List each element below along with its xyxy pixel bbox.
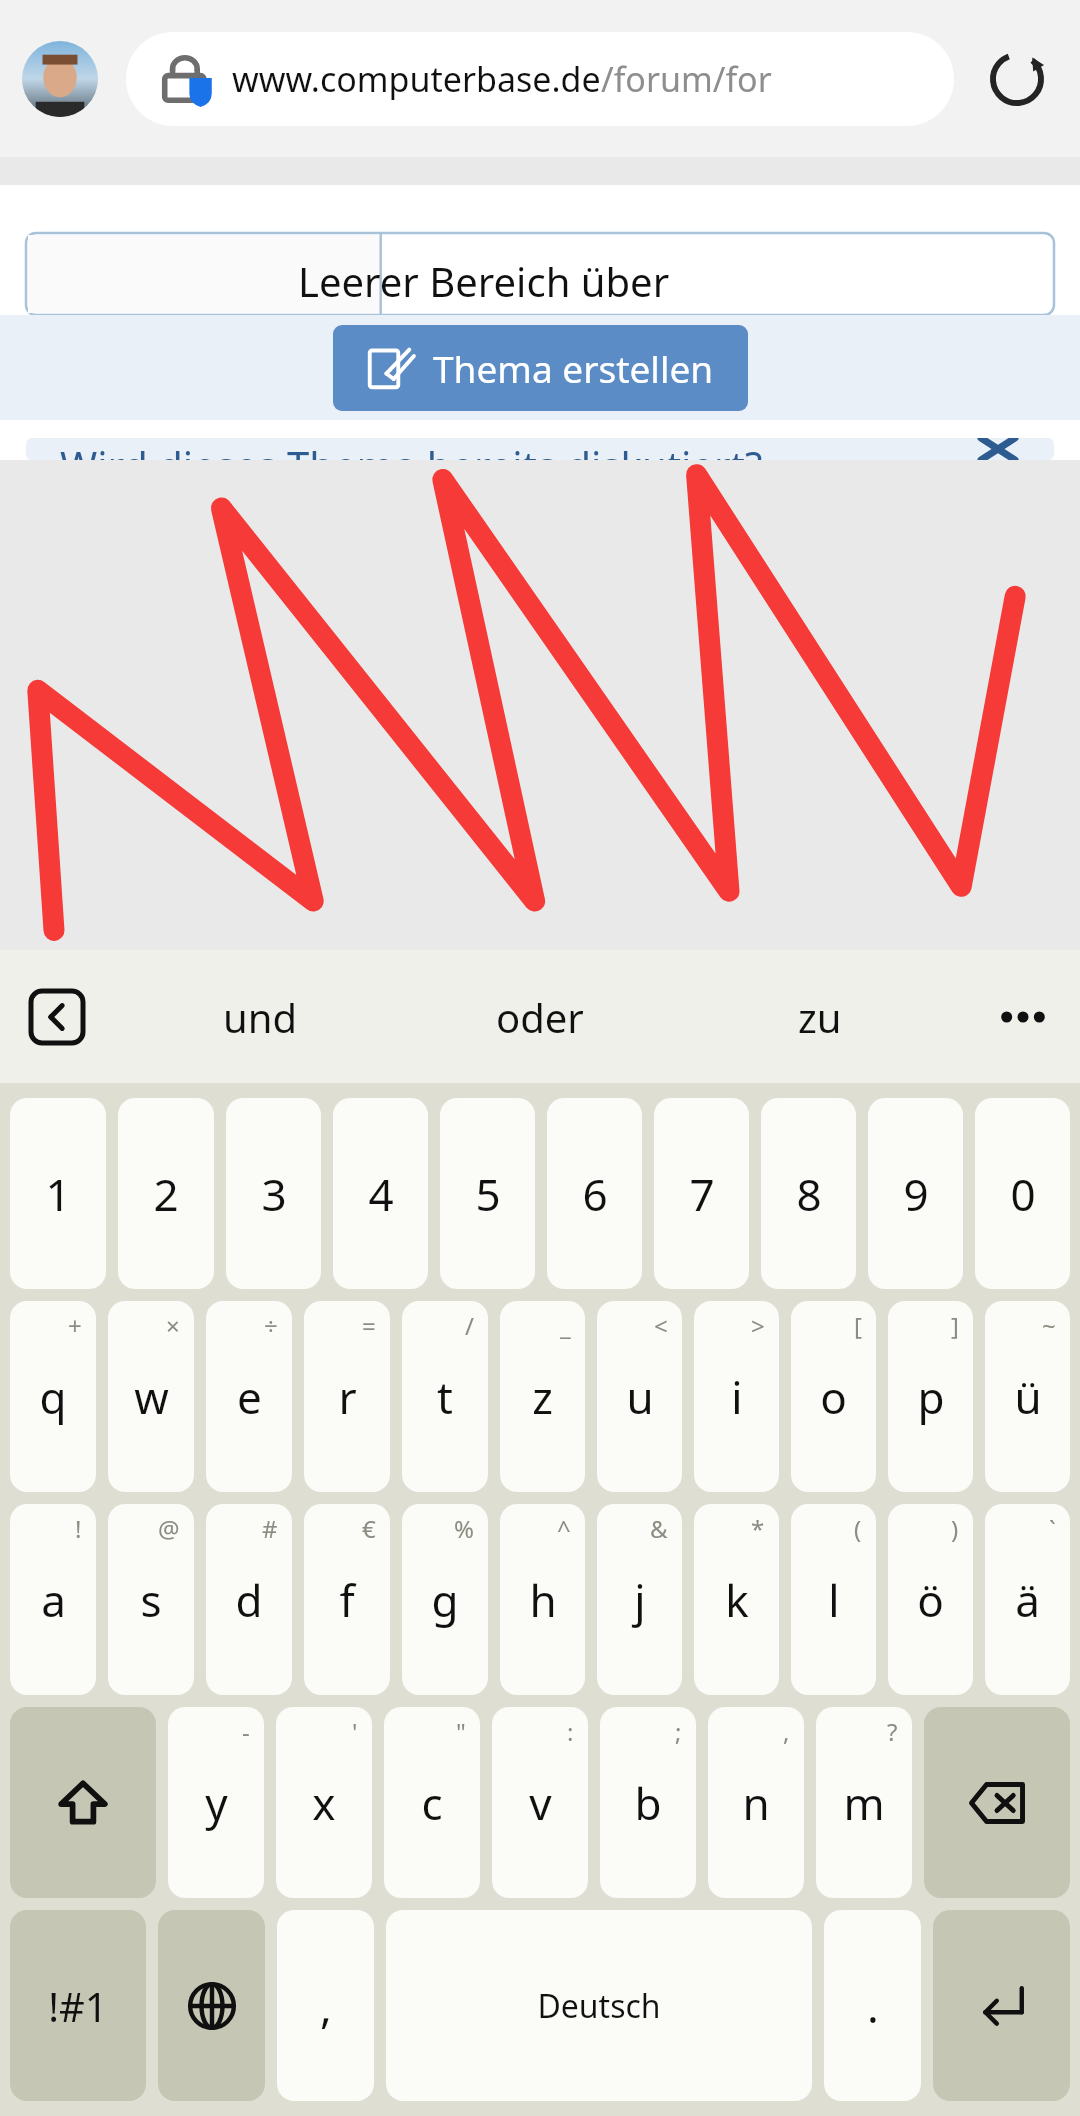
button[interactable]: € <box>304 1504 390 1695</box>
button[interactable]: Close <box>968 438 1028 460</box>
staticText: u <box>626 1367 654 1427</box>
button[interactable]: : <box>492 1707 588 1898</box>
button[interactable]: 7 <box>654 1098 749 1289</box>
staticText: ] <box>951 1309 959 1342</box>
staticText: 2 <box>153 1164 179 1224</box>
staticText: - <box>242 1715 250 1748</box>
button[interactable]: ÷ <box>206 1301 292 1492</box>
button[interactable]: , <box>708 1707 804 1898</box>
staticText: < <box>654 1309 668 1342</box>
staticText: 6 <box>582 1164 608 1224</box>
staticText: ä <box>1015 1570 1040 1630</box>
button[interactable]: / <box>402 1301 488 1492</box>
button[interactable]: # <box>206 1504 292 1695</box>
button[interactable]: @ <box>108 1504 194 1695</box>
staticText: % <box>454 1512 474 1545</box>
button[interactable]: _ <box>500 1301 585 1492</box>
staticText: 5 <box>475 1164 501 1224</box>
staticText: d <box>235 1570 263 1630</box>
button[interactable]: und <box>120 950 400 1083</box>
staticText: f <box>339 1570 355 1630</box>
staticText: i <box>731 1367 743 1427</box>
button[interactable]: , <box>277 1910 374 2101</box>
button[interactable]: = <box>304 1301 390 1492</box>
button[interactable]: ] <box>888 1301 973 1492</box>
button[interactable]: More options <box>992 986 1054 1048</box>
button[interactable]: + <box>10 1301 96 1492</box>
button[interactable]: Shift <box>10 1707 156 1898</box>
button[interactable]: Change language <box>158 1910 265 2101</box>
button[interactable]: 8 <box>761 1098 856 1289</box>
button[interactable]: . <box>824 1910 921 2101</box>
staticText: e <box>237 1367 262 1427</box>
staticText: [ <box>854 1309 862 1342</box>
button[interactable]: 2 <box>118 1098 214 1289</box>
staticText: + <box>68 1309 82 1342</box>
button[interactable]: Wird dieses Thema bereits diskutiert? <box>26 438 1054 460</box>
button[interactable]: ` <box>985 1504 1070 1695</box>
staticText: ? <box>887 1715 898 1748</box>
button[interactable]: 5 <box>440 1098 535 1289</box>
button[interactable]: ) <box>888 1504 973 1695</box>
button[interactable]: ' <box>276 1707 372 1898</box>
button[interactable]: www.computerbase.de <box>126 32 954 126</box>
staticText: b <box>634 1773 662 1833</box>
button[interactable]: ! <box>10 1504 96 1695</box>
button[interactable]: > <box>694 1301 779 1492</box>
staticText: ` <box>1049 1512 1056 1545</box>
staticText: Leerer Bereich über <box>298 254 670 308</box>
staticText: s <box>140 1570 162 1630</box>
button[interactable]: " <box>384 1707 480 1898</box>
staticText: 9 <box>903 1164 929 1224</box>
button[interactable]: 0 <box>975 1098 1070 1289</box>
staticText: ÷ <box>264 1309 278 1342</box>
button[interactable]: Deutsch <box>386 1910 812 2101</box>
button[interactable]: ? <box>816 1707 912 1898</box>
button[interactable]: ; <box>600 1707 696 1898</box>
staticText: q <box>39 1367 67 1427</box>
staticText: ( <box>854 1512 862 1545</box>
button[interactable]: oder <box>400 950 680 1083</box>
button[interactable]: zu <box>680 950 960 1083</box>
button[interactable]: - <box>168 1707 264 1898</box>
button[interactable]: & <box>597 1504 682 1695</box>
staticText: Deutsch <box>537 1984 661 2028</box>
button[interactable]: ^ <box>500 1504 585 1695</box>
button[interactable]: [ <box>791 1301 876 1492</box>
staticText: > <box>751 1309 765 1342</box>
button[interactable]: Enter <box>933 1910 1070 2101</box>
staticText: @ <box>158 1512 180 1545</box>
button[interactable]: 3 <box>226 1098 321 1289</box>
staticText: ö <box>917 1570 944 1630</box>
button[interactable]: ( <box>791 1504 876 1695</box>
staticText: g <box>431 1570 459 1630</box>
staticText: zu <box>798 990 842 1044</box>
staticText: ü <box>1014 1367 1042 1427</box>
button[interactable]: × <box>108 1301 194 1492</box>
staticText: c <box>421 1773 443 1833</box>
button[interactable]: 6 <box>547 1098 642 1289</box>
staticText: 4 <box>368 1164 394 1224</box>
button[interactable]: * <box>694 1504 779 1695</box>
staticText: € <box>362 1512 376 1545</box>
button[interactable]: 9 <box>868 1098 963 1289</box>
button[interactable]: Reload <box>976 38 1058 120</box>
staticText: a <box>41 1570 66 1630</box>
button[interactable]: Thema erstellen <box>333 325 748 411</box>
button[interactable]: !#1 <box>10 1910 146 2101</box>
button[interactable]: 1 <box>10 1098 106 1289</box>
button[interactable]: 4 <box>333 1098 428 1289</box>
button[interactable]: Profile <box>22 41 98 117</box>
staticText: oder <box>496 990 584 1044</box>
button[interactable]: Expand suggestions <box>26 986 88 1048</box>
staticText: m <box>843 1773 885 1833</box>
staticText: t <box>437 1367 453 1427</box>
button[interactable]: ~ <box>985 1301 1070 1492</box>
button[interactable]: Backspace <box>924 1707 1070 1898</box>
staticText: 7 <box>689 1164 715 1224</box>
button[interactable]: < <box>597 1301 682 1492</box>
button[interactable]: % <box>402 1504 488 1695</box>
staticText: 3 <box>261 1164 287 1224</box>
staticText: ) <box>951 1512 959 1545</box>
staticText: , <box>783 1715 790 1748</box>
